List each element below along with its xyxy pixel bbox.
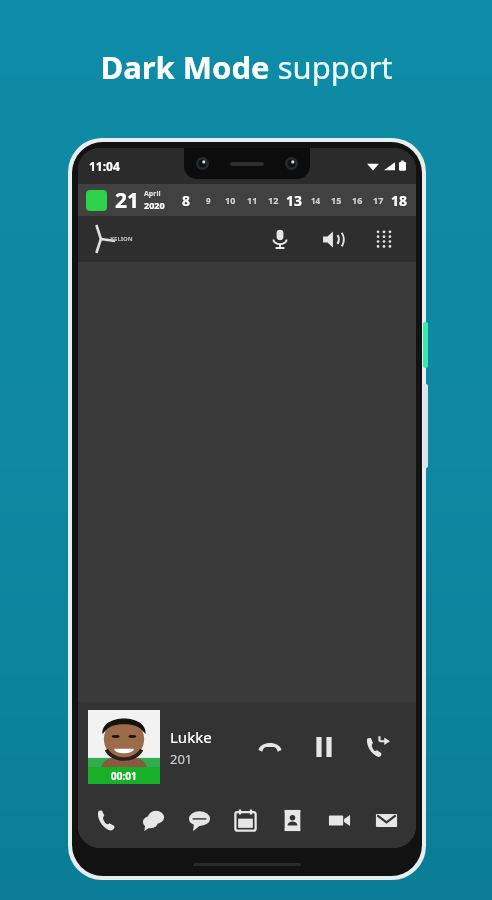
button[interactable]: SMS xyxy=(176,792,222,848)
button[interactable]: 18 xyxy=(389,184,410,216)
staticText: 16 xyxy=(352,194,363,206)
staticText: 201 xyxy=(170,750,193,768)
button[interactable]: Phone xyxy=(84,792,130,848)
button[interactable]: Chat xyxy=(130,792,176,848)
staticText: 11:04 xyxy=(89,158,120,174)
button[interactable]: 15 xyxy=(326,184,347,216)
staticText: 9 xyxy=(206,195,211,206)
staticText: 10 xyxy=(225,194,236,206)
button[interactable]: Microphone xyxy=(260,219,300,259)
staticText: 17 xyxy=(373,194,384,206)
staticText: 18 xyxy=(391,191,408,210)
button[interactable]: App logo xyxy=(90,222,168,256)
button[interactable]: Lukke xyxy=(170,727,250,768)
button[interactable]: 12 xyxy=(263,184,284,216)
button[interactable]: 14 xyxy=(305,184,326,216)
button[interactable]: Hang up xyxy=(250,727,290,767)
button[interactable]: 00:01 xyxy=(88,710,160,784)
button[interactable]: Status xyxy=(86,190,107,211)
staticText: 8 xyxy=(182,191,191,210)
staticText: 11 xyxy=(247,194,258,206)
staticText: 13 xyxy=(286,191,303,210)
button[interactable]: 9 xyxy=(197,184,219,216)
staticText: 2020 xyxy=(144,199,165,211)
button[interactable]: 16 xyxy=(347,184,368,216)
button[interactable]: Contacts xyxy=(269,792,316,848)
staticText: Dark Mode support xyxy=(100,46,393,88)
button[interactable]: Speaker xyxy=(312,219,352,259)
button[interactable]: 8 xyxy=(175,184,197,216)
button[interactable]: Video xyxy=(316,792,363,848)
staticText: 21 xyxy=(115,186,140,215)
staticText: April xyxy=(144,189,161,199)
button[interactable]: 10 xyxy=(219,184,241,216)
button[interactable]: Dialpad xyxy=(364,219,404,259)
button[interactable]: 13 xyxy=(284,184,305,216)
button[interactable]: Calendar xyxy=(222,792,269,848)
button[interactable]: Hold xyxy=(304,727,344,767)
staticText: 12 xyxy=(268,194,279,206)
staticText: Lukke xyxy=(170,727,212,747)
staticText: 00:01 xyxy=(111,769,137,783)
staticText: 15 xyxy=(331,194,342,206)
staticText: XELION xyxy=(110,235,133,243)
button[interactable]: 11 xyxy=(241,184,263,216)
button[interactable]: 17 xyxy=(368,184,389,216)
button[interactable]: Transfer call xyxy=(358,727,398,767)
staticText: 14 xyxy=(311,195,321,206)
button[interactable]: Mail xyxy=(363,792,410,848)
